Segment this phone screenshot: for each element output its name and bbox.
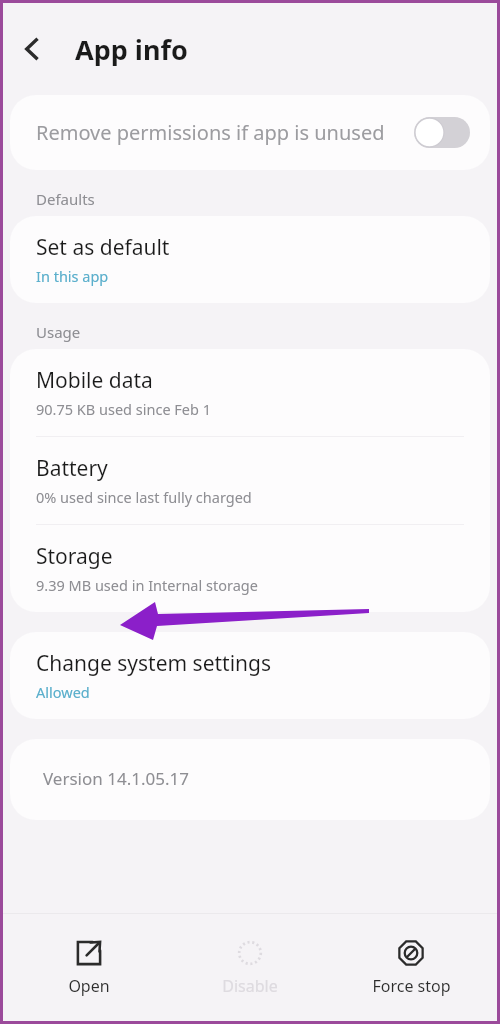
staticText: Mobile data xyxy=(36,366,153,395)
staticText: Open xyxy=(68,975,110,997)
button[interactable]: Storage xyxy=(10,525,490,612)
staticText: Usage xyxy=(36,322,81,342)
staticText: Set as default xyxy=(36,233,170,262)
button[interactable]: Remove permissions toggle xyxy=(414,117,470,148)
button[interactable]: Force stop xyxy=(336,930,486,1005)
staticText: In this app xyxy=(36,266,109,286)
staticText: App info xyxy=(75,31,188,68)
staticText: 0% used since last fully charged xyxy=(36,487,252,507)
button[interactable]: Remove permissions if app is unused xyxy=(10,95,490,170)
staticText: 9.39 MB used in Internal storage xyxy=(36,575,258,595)
button[interactable]: Mobile data xyxy=(10,349,490,436)
staticText: Battery xyxy=(36,454,108,483)
staticText: Storage xyxy=(36,542,113,571)
button[interactable]: Open xyxy=(14,930,164,1005)
staticText: Force stop xyxy=(372,975,451,997)
staticText: Disable xyxy=(222,975,278,997)
button[interactable]: Battery xyxy=(10,437,490,524)
button[interactable]: Change system settings xyxy=(10,632,490,719)
button[interactable]: Back xyxy=(3,20,61,78)
staticText: Allowed xyxy=(36,682,90,702)
staticText: 90.75 KB used since Feb 1 xyxy=(36,399,212,419)
staticText: Change system settings xyxy=(36,649,272,678)
staticText: Version 14.1.05.17 xyxy=(43,767,189,790)
staticText: Remove permissions if app is unused xyxy=(36,119,398,146)
button[interactable]: Disable xyxy=(175,930,325,1005)
button[interactable]: Set as default xyxy=(10,216,490,303)
staticText: Defaults xyxy=(36,189,95,209)
